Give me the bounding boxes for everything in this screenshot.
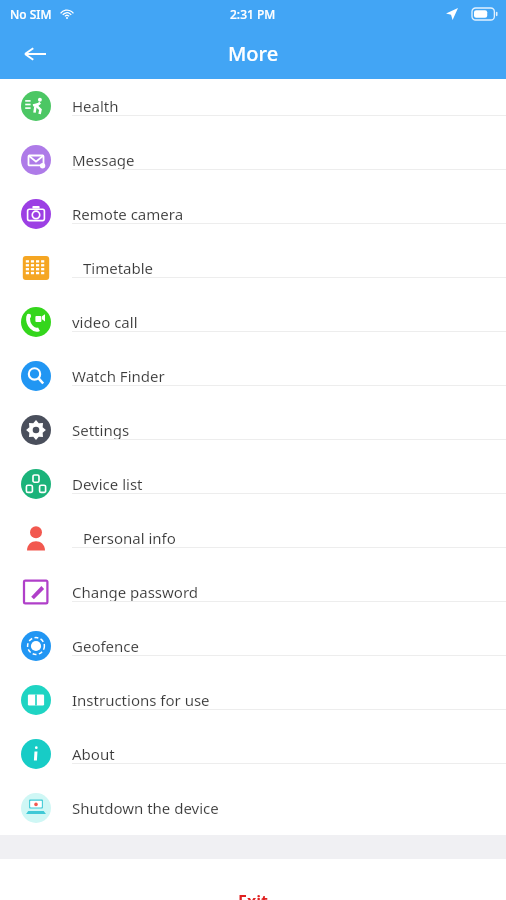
staticText: Health bbox=[72, 96, 119, 116]
button[interactable]: video call bbox=[0, 295, 506, 349]
staticText: More bbox=[228, 40, 279, 67]
button[interactable]: Watch Finder bbox=[0, 349, 506, 403]
button[interactable]: About bbox=[0, 727, 506, 781]
staticText: Exit bbox=[238, 890, 268, 900]
staticText: Instructions for use bbox=[72, 690, 210, 710]
button[interactable]: Exit bbox=[0, 890, 506, 900]
staticText: Timetable bbox=[83, 258, 154, 278]
button[interactable]: Message bbox=[0, 133, 506, 187]
staticText: Remote camera bbox=[72, 204, 184, 224]
button[interactable]: Device list bbox=[0, 457, 506, 511]
staticText: Device list bbox=[72, 474, 143, 494]
staticText: Watch Finder bbox=[72, 366, 165, 386]
button[interactable]: Timetable bbox=[0, 241, 506, 295]
staticText: Geofence bbox=[72, 636, 140, 656]
button[interactable]: Instructions for use bbox=[0, 673, 506, 727]
staticText: About bbox=[72, 744, 115, 764]
button[interactable]: Personal info bbox=[0, 511, 506, 565]
button[interactable]: Geofence bbox=[0, 619, 506, 673]
staticText: 2:31 PM bbox=[230, 6, 276, 22]
staticText: Message bbox=[72, 150, 135, 170]
button[interactable]: Settings bbox=[0, 403, 506, 457]
button[interactable]: Shutdown the device bbox=[0, 781, 506, 835]
button[interactable]: Change password bbox=[0, 565, 506, 619]
button[interactable]: Health bbox=[0, 79, 506, 133]
staticText: Personal info bbox=[83, 528, 176, 548]
button[interactable]: Remote camera bbox=[0, 187, 506, 241]
button[interactable]: Back bbox=[18, 37, 52, 71]
staticText: No SIM bbox=[10, 6, 52, 22]
staticText: video call bbox=[72, 312, 138, 332]
staticText: Change password bbox=[72, 582, 199, 602]
staticText: Settings bbox=[72, 420, 130, 440]
staticText: Shutdown the device bbox=[72, 798, 219, 818]
